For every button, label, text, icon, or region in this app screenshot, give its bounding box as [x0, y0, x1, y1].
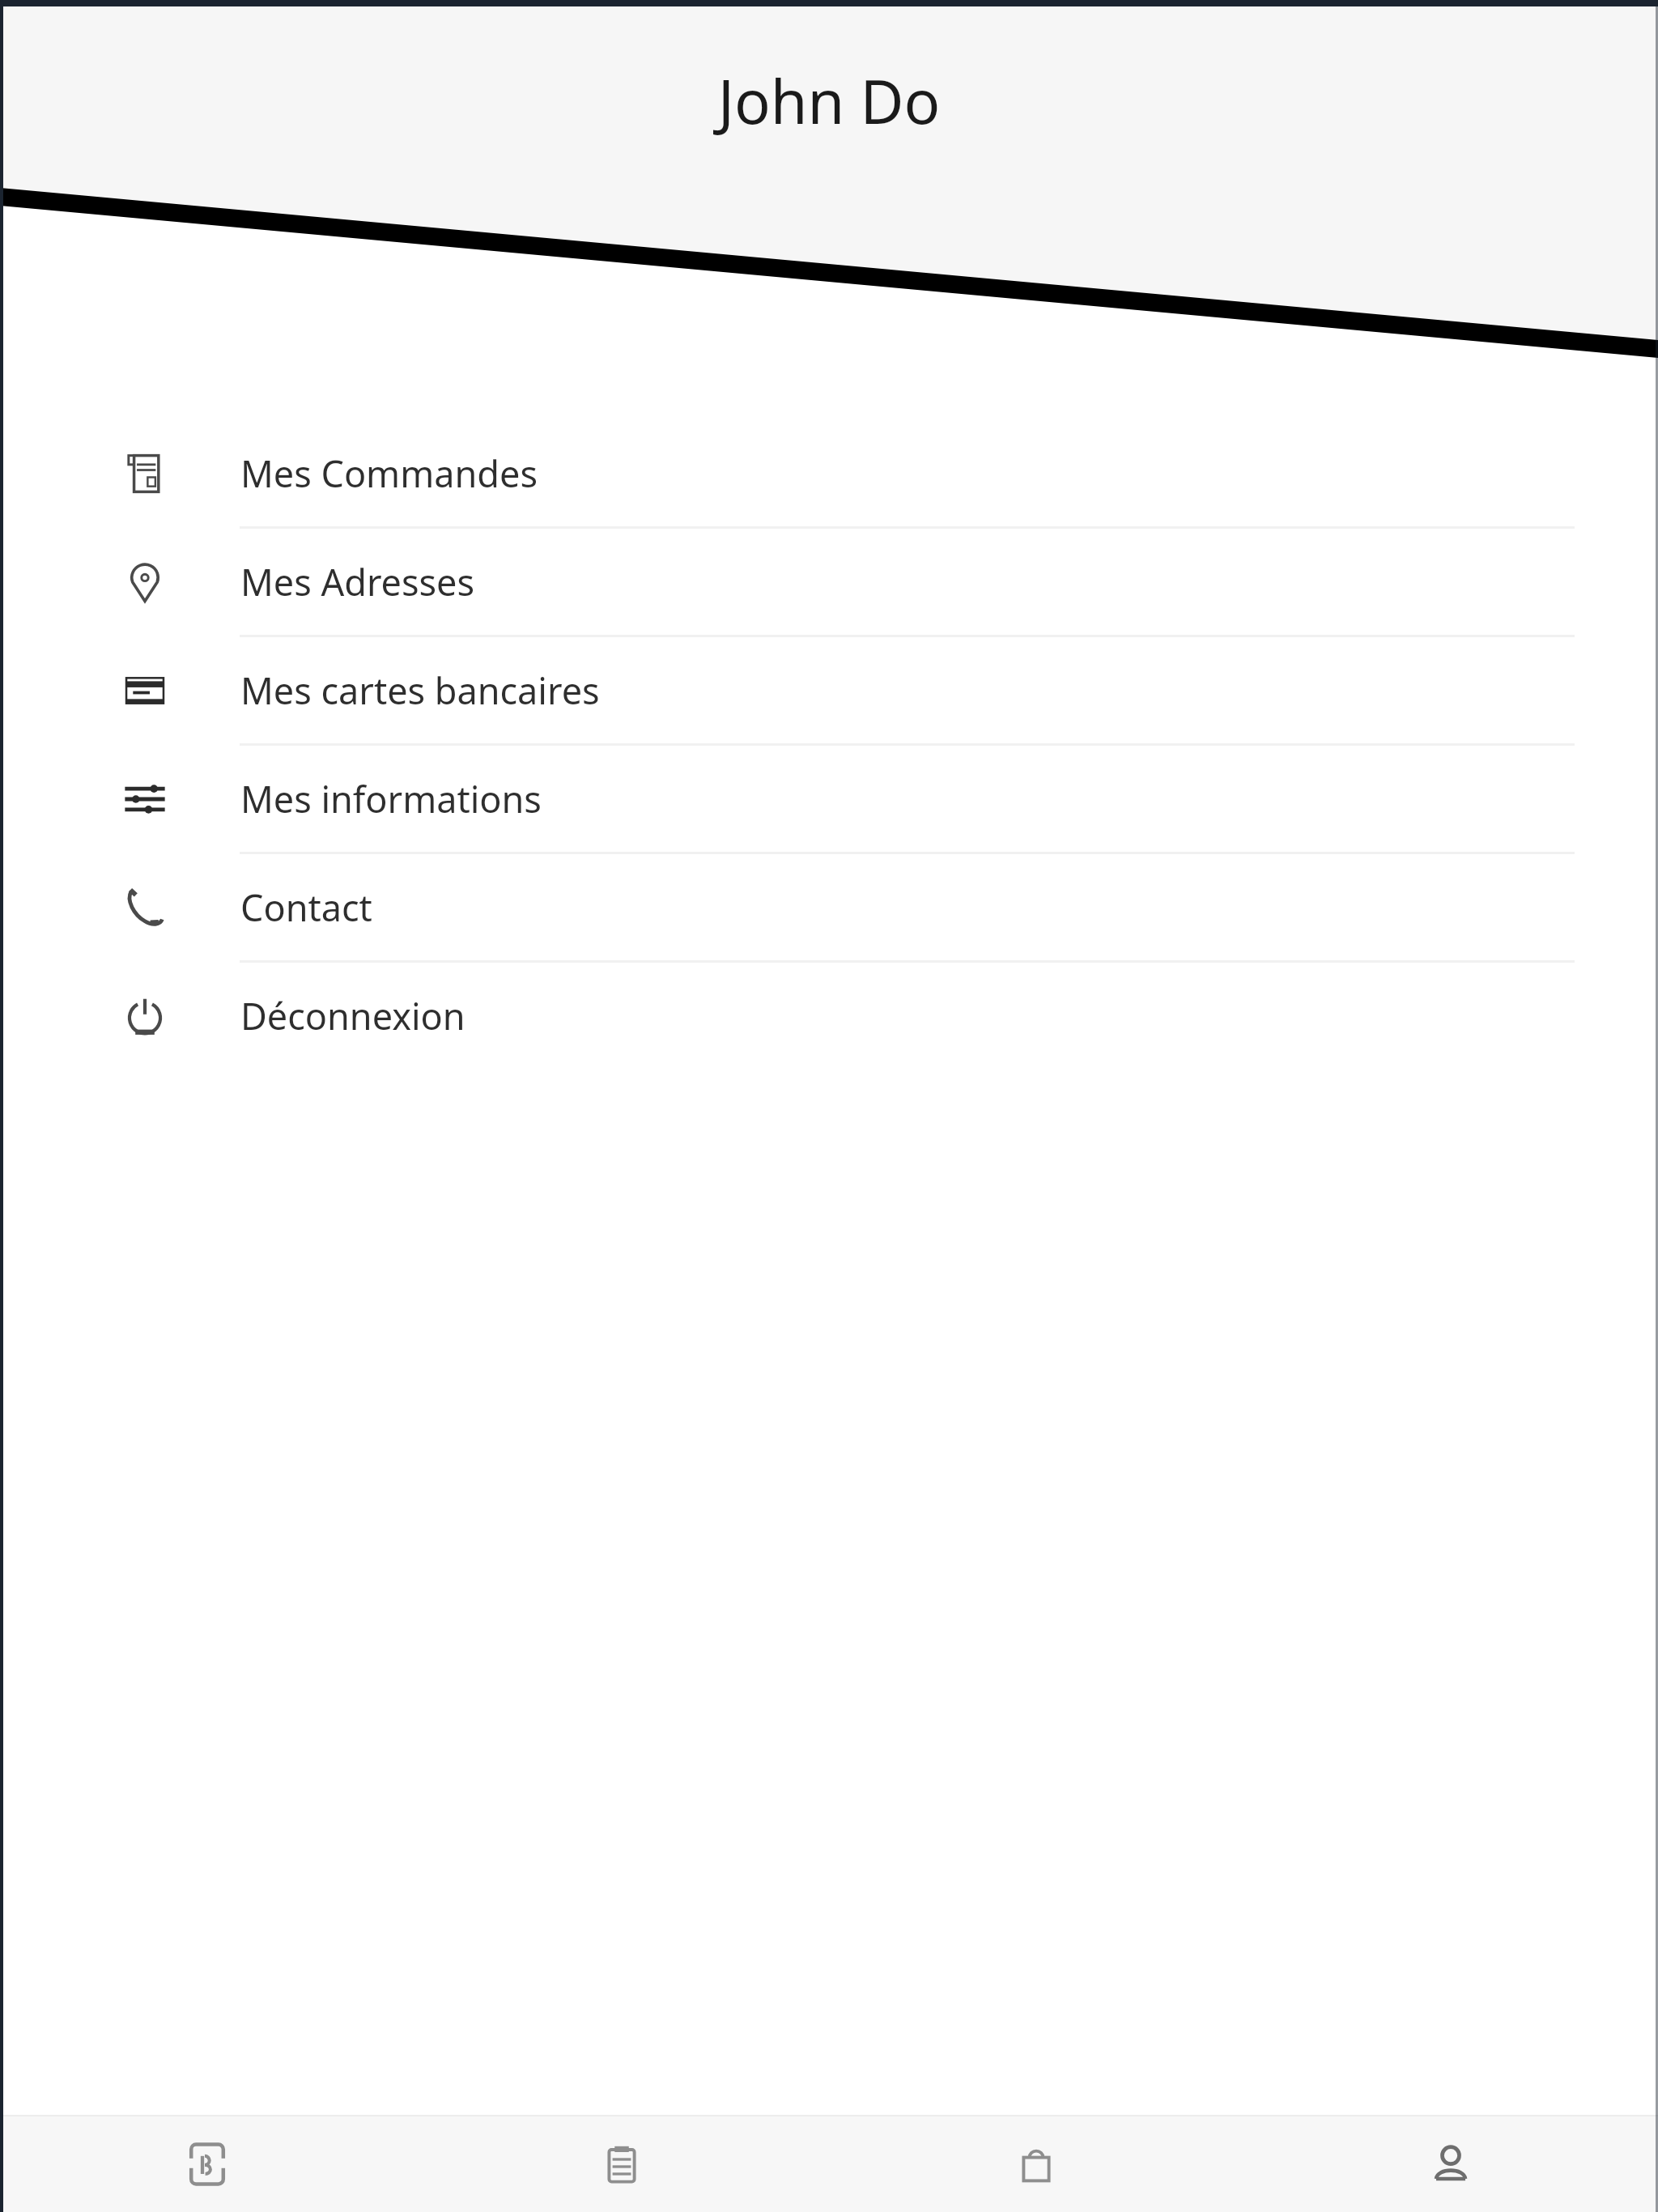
button[interactable]: Panier — [829, 2116, 1243, 2212]
button[interactable]: Catalogue — [414, 2116, 829, 2212]
staticText: Mes informations — [240, 774, 542, 823]
button[interactable]: Mon compte — [1243, 2116, 1658, 2212]
button[interactable]: Contact — [0, 854, 1658, 963]
staticText: Mes Adresses — [240, 557, 474, 606]
staticText: John Do — [0, 60, 1658, 142]
button[interactable]: Mes cartes bancaires — [0, 637, 1658, 746]
staticText: Mes Commandes — [240, 449, 538, 498]
button[interactable]: Déconnexion — [0, 963, 1658, 1069]
staticText: Déconnexion — [240, 991, 466, 1040]
button[interactable]: Mes informations — [0, 746, 1658, 854]
staticText: Contact — [240, 883, 372, 932]
staticText: Mes cartes bancaires — [240, 666, 600, 715]
button[interactable]: Mes Adresses — [0, 529, 1658, 637]
button[interactable]: Mes Commandes — [0, 420, 1658, 529]
button[interactable]: Accueil — [0, 2116, 414, 2212]
